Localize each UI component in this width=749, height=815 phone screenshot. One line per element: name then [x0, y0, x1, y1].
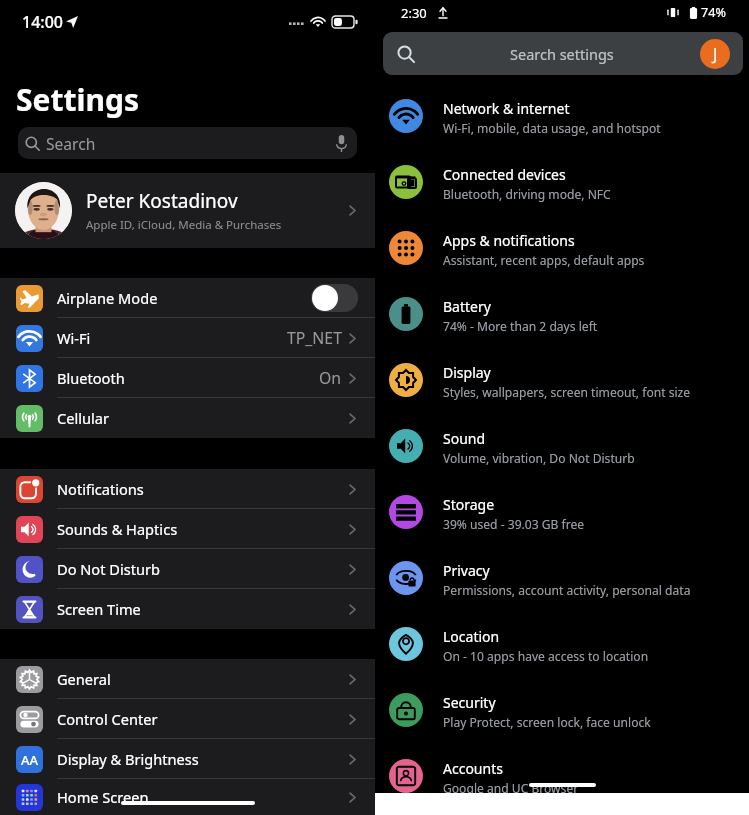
- button[interactable]: Search settings: [383, 32, 743, 75]
- staticText: 2:30: [401, 4, 427, 22]
- staticText: 14:00: [22, 11, 63, 33]
- staticText: Security: [443, 693, 496, 712]
- staticText: Wi-Fi, mobile, data usage, and hotspot: [443, 120, 661, 136]
- staticText: On - 10 apps have access to location: [443, 648, 649, 664]
- staticText: J: [713, 43, 718, 65]
- staticText: Peter Kostadinov: [86, 188, 238, 214]
- button[interactable]: Location: [375, 611, 749, 677]
- staticText: Permissions, account activity, personal …: [443, 582, 691, 598]
- button[interactable]: Security: [375, 677, 749, 743]
- staticText: 39% used - 39.03 GB free: [443, 516, 585, 532]
- staticText: Cellular: [57, 408, 109, 428]
- staticText: General: [57, 669, 111, 689]
- staticText: Apps & notifications: [443, 231, 575, 250]
- staticText: Sound: [443, 429, 486, 448]
- staticText: Privacy: [443, 561, 490, 580]
- staticText: Wi-Fi: [57, 328, 91, 348]
- button[interactable]: Storage: [375, 479, 749, 545]
- button[interactable]: Sound: [375, 413, 749, 479]
- staticText: Styles, wallpapers, screen timeout, font…: [443, 384, 691, 400]
- button[interactable]: Control Center: [0, 699, 375, 739]
- staticText: Battery: [443, 297, 491, 316]
- staticText: Do Not Disturb: [57, 559, 160, 579]
- button[interactable]: AA: [0, 739, 375, 779]
- staticText: Volume, vibration, Do Not Disturb: [443, 450, 635, 466]
- staticText: Assistant, recent apps, default apps: [443, 252, 645, 268]
- button[interactable]: Privacy: [375, 545, 749, 611]
- button[interactable]: Accounts: [375, 743, 749, 809]
- button[interactable]: Sounds & Haptics: [0, 509, 375, 549]
- staticText: Search: [46, 133, 96, 154]
- staticText: Sounds & Haptics: [57, 519, 178, 539]
- staticText: 74% - More than 2 days left: [443, 318, 598, 334]
- staticText: Accounts: [443, 759, 503, 778]
- staticText: Display & Brightness: [57, 749, 199, 769]
- button[interactable]: Bluetooth: [0, 358, 375, 398]
- staticText: Network & internet: [443, 99, 570, 118]
- button[interactable]: Network & internet: [375, 83, 749, 149]
- button[interactable]: Peter Kostadinov: [0, 173, 375, 248]
- staticText: Home Screen: [57, 787, 149, 807]
- staticText: Search settings: [510, 44, 614, 64]
- button[interactable]: Screen Time: [0, 589, 375, 629]
- button[interactable]: Do Not Disturb: [0, 549, 375, 589]
- staticText: AA: [21, 751, 39, 769]
- button[interactable]: Notifications: [0, 469, 375, 509]
- button[interactable]: Search: [18, 127, 357, 159]
- staticText: TP_NET: [287, 327, 342, 349]
- staticText: Google and UC Browser: [443, 780, 579, 796]
- button[interactable]: Account: [700, 39, 730, 69]
- button[interactable]: Apps & notifications: [375, 215, 749, 281]
- button[interactable]: Home Screen: [0, 779, 375, 815]
- staticText: 74%: [701, 4, 726, 21]
- staticText: Control Center: [57, 709, 158, 729]
- staticText: Play Protect, screen lock, face unlock: [443, 714, 651, 730]
- button[interactable]: Battery: [375, 281, 749, 347]
- staticText: On: [319, 367, 342, 389]
- button[interactable]: Connected devices: [375, 149, 749, 215]
- button[interactable]: Display: [375, 347, 749, 413]
- staticText: Display: [443, 363, 491, 382]
- button[interactable]: Cellular: [0, 398, 375, 438]
- staticText: Bluetooth, driving mode, NFC: [443, 186, 611, 202]
- staticText: Connected devices: [443, 165, 566, 184]
- staticText: Screen Time: [57, 599, 141, 619]
- button[interactable]: Airplane Mode: [0, 278, 375, 318]
- staticText: Notifications: [57, 479, 144, 499]
- staticText: Storage: [443, 495, 495, 514]
- button[interactable]: Wi-Fi: [0, 318, 375, 358]
- staticText: Bluetooth: [57, 368, 125, 388]
- staticText: Airplane Mode: [57, 288, 158, 308]
- button[interactable]: General: [0, 659, 375, 699]
- staticText: Settings: [16, 79, 139, 120]
- staticText: Location: [443, 627, 500, 646]
- staticText: Apple ID, iCloud, Media & Purchases: [86, 217, 282, 233]
